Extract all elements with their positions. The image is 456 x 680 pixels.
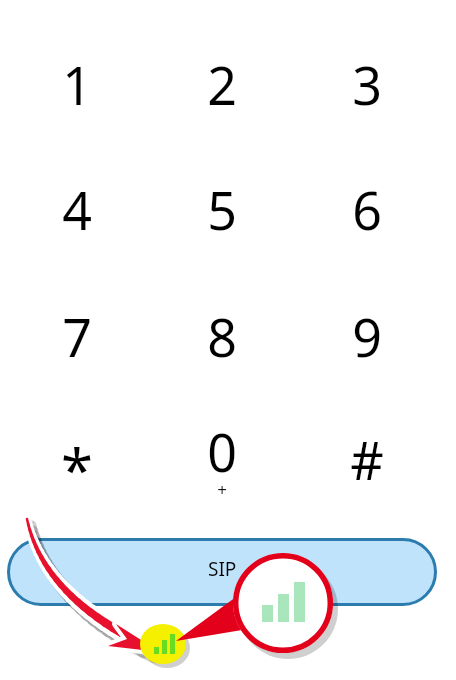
button[interactable]: 6 xyxy=(297,150,437,268)
button[interactable]: 2 xyxy=(152,25,292,143)
button[interactable]: 8 xyxy=(152,277,292,395)
button[interactable]: # xyxy=(297,400,437,518)
button[interactable]: 1 xyxy=(7,25,147,143)
staticText: 3 xyxy=(352,49,382,120)
staticText: 5 xyxy=(207,174,237,245)
staticText: 0 xyxy=(207,416,237,487)
staticText: 7 xyxy=(62,301,92,372)
staticText: 8 xyxy=(207,301,237,372)
staticText: 4 xyxy=(62,174,92,245)
staticText: + xyxy=(217,478,227,501)
button[interactable]: 7 xyxy=(7,277,147,395)
button[interactable]: 9 xyxy=(297,277,437,395)
staticText: 1 xyxy=(62,49,92,120)
staticText: 9 xyxy=(352,301,382,372)
button[interactable]: * xyxy=(7,400,147,518)
staticText: # xyxy=(350,424,384,495)
button[interactable]: SIP xyxy=(7,538,437,606)
button[interactable]: 5 xyxy=(152,150,292,268)
staticText: 2 xyxy=(207,49,237,120)
staticText: 6 xyxy=(352,174,382,245)
button[interactable]: 0 xyxy=(152,400,292,518)
staticText: * xyxy=(61,430,93,509)
staticText: SIP xyxy=(208,556,237,582)
button[interactable]: Signal strength xyxy=(233,553,333,653)
button[interactable]: 3 xyxy=(297,25,437,143)
button[interactable]: 4 xyxy=(7,150,147,268)
